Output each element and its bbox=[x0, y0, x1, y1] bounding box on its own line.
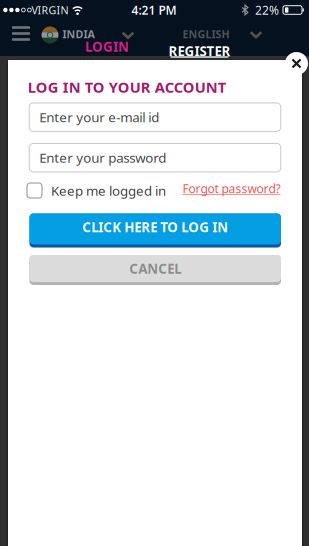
button[interactable]: Forgot password? bbox=[120, 180, 280, 196]
staticText: CANCEL bbox=[129, 260, 181, 277]
staticText: LOGIN bbox=[85, 38, 129, 55]
staticText: LOG IN TO YOUR ACCOUNT bbox=[28, 77, 226, 97]
staticText: Forgot password? bbox=[182, 180, 280, 196]
staticText: 4:21 PM bbox=[131, 2, 176, 18]
staticText: VIRGIN bbox=[31, 3, 68, 17]
button[interactable]: REGISTER bbox=[168, 42, 230, 60]
staticText: Enter your e-mail id bbox=[39, 108, 159, 126]
staticText: REGISTER bbox=[168, 42, 230, 60]
staticText: ENGLISH bbox=[182, 27, 229, 41]
button[interactable]: Keep me logged in bbox=[27, 182, 227, 199]
button[interactable]: Close bbox=[285, 52, 308, 75]
staticText: Enter your password bbox=[39, 149, 166, 166]
staticText: Keep me logged in bbox=[51, 182, 166, 199]
button[interactable]: Enter your e-mail id bbox=[29, 103, 281, 131]
button[interactable]: CLICK HERE TO LOG IN bbox=[29, 213, 281, 247]
button[interactable]: ENGLISH bbox=[174, 20, 266, 50]
staticText: INDIA bbox=[62, 27, 94, 41]
button[interactable]: Menu bbox=[12, 26, 30, 41]
button[interactable]: CANCEL bbox=[29, 255, 281, 285]
button[interactable]: LOGIN bbox=[85, 38, 129, 55]
staticText: 22% bbox=[255, 2, 279, 18]
staticText: CLICK HERE TO LOG IN bbox=[82, 218, 228, 236]
button[interactable]: Enter your password bbox=[29, 143, 281, 172]
button[interactable]: INDIA bbox=[36, 20, 140, 50]
